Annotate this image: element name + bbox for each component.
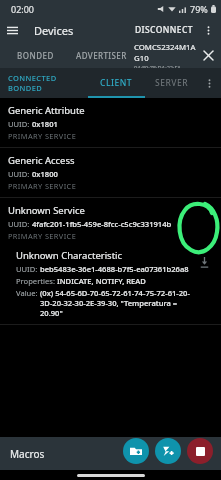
staticText: PRIMARY SERVICE bbox=[8, 131, 77, 141]
button[interactable]: Open navigation menu bbox=[0, 18, 24, 42]
staticText: 4fafc201-1fb5-459e-8fcc-c5c9c331914b bbox=[32, 219, 172, 229]
staticText: beb5483e-36e1-4688-b7f5-ea07361b26a8 bbox=[40, 264, 189, 274]
staticText: 0x1801 bbox=[32, 119, 58, 129]
button[interactable]: ADVERTISER bbox=[70, 42, 132, 68]
staticText: DISCONNECT bbox=[135, 24, 193, 36]
staticText: CLIENT bbox=[100, 77, 133, 89]
staticText: 02:00 bbox=[11, 3, 35, 15]
staticText: ADVERTISER bbox=[76, 50, 127, 61]
staticText: 94:89:7E:DA:22:FA bbox=[134, 64, 181, 68]
staticText: BONDED bbox=[8, 83, 43, 93]
staticText: UUID: bbox=[8, 119, 32, 129]
staticText: Generic Access bbox=[8, 154, 75, 167]
button[interactable]: Stop bbox=[187, 438, 213, 464]
button[interactable]: Read characteristic bbox=[191, 249, 217, 275]
staticText: Properties: bbox=[16, 276, 57, 286]
button[interactable]: SERVER bbox=[145, 68, 199, 98]
staticText: Devices bbox=[34, 23, 74, 38]
staticText: UUID: bbox=[8, 169, 32, 179]
staticText: CONNECTED bbox=[8, 73, 57, 83]
staticText: PRIMARY SERVICE bbox=[8, 231, 77, 241]
button[interactable]: BONDED bbox=[0, 42, 70, 68]
button[interactable]: DISCONNECT bbox=[131, 20, 197, 40]
button[interactable]: More options bbox=[197, 19, 219, 41]
staticText: Value: bbox=[16, 288, 40, 298]
button[interactable]: Add folder macro bbox=[123, 438, 149, 464]
staticText: (0x) 54-65-6D-70-65-72-61-74-75-72-61-20… bbox=[40, 288, 191, 318]
button[interactable]: COMCS2324M1AG10 bbox=[132, 42, 197, 68]
staticText: Macros bbox=[10, 447, 45, 461]
staticText: 0x1800 bbox=[32, 169, 58, 179]
button[interactable]: Unknown Characteristic bbox=[0, 247, 221, 324]
staticText: INDICATE, NOTIFY, READ bbox=[57, 276, 146, 286]
staticText: 79% bbox=[190, 3, 208, 15]
staticText: Generic Attribute bbox=[8, 104, 85, 117]
button[interactable]: Add macro bbox=[155, 438, 181, 464]
button[interactable]: Close device tab bbox=[197, 44, 219, 66]
staticText: COMCS2324M1AG10 bbox=[134, 42, 197, 64]
staticText: UUID: bbox=[8, 219, 32, 229]
staticText: Unknown Service bbox=[8, 204, 85, 217]
button[interactable]: Generic Access bbox=[0, 148, 221, 197]
staticText: BONDED bbox=[17, 50, 54, 61]
staticText: Unknown Characteristic bbox=[16, 249, 123, 262]
staticText: SERVER bbox=[155, 77, 189, 89]
button[interactable]: More options bbox=[199, 73, 219, 93]
staticText: PRIMARY SERVICE bbox=[8, 181, 77, 191]
button[interactable]: Unknown Service bbox=[0, 198, 221, 247]
button[interactable]: Generic Attribute bbox=[0, 98, 221, 147]
button[interactable]: CLIENT bbox=[88, 68, 145, 98]
staticText: UUID: bbox=[16, 264, 40, 274]
